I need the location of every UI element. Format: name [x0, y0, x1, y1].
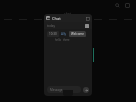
button[interactable]: App icon: [46, 16, 50, 20]
button[interactable]: More options: [85, 16, 90, 21]
staticText: today: [47, 24, 55, 28]
staticText: there: [63, 38, 70, 42]
button[interactable]: 10:30: [47, 31, 86, 42]
staticText: Ally: [61, 32, 67, 36]
button[interactable]: Menu: [124, 2, 130, 8]
button[interactable]: Search: [114, 2, 120, 8]
staticText: Welcome: [71, 32, 84, 36]
button[interactable]: chat: [60, 10, 76, 17]
staticText: 10:30: [49, 32, 57, 36]
button[interactable]: Message: [47, 86, 81, 93]
button[interactable]: Profile: [85, 24, 89, 28]
staticText: Message: [50, 88, 63, 92]
staticText: hello: [55, 38, 61, 42]
staticText: Chat: [52, 16, 61, 21]
staticText: chat: [64, 11, 72, 16]
button[interactable]: Send: [83, 87, 89, 93]
